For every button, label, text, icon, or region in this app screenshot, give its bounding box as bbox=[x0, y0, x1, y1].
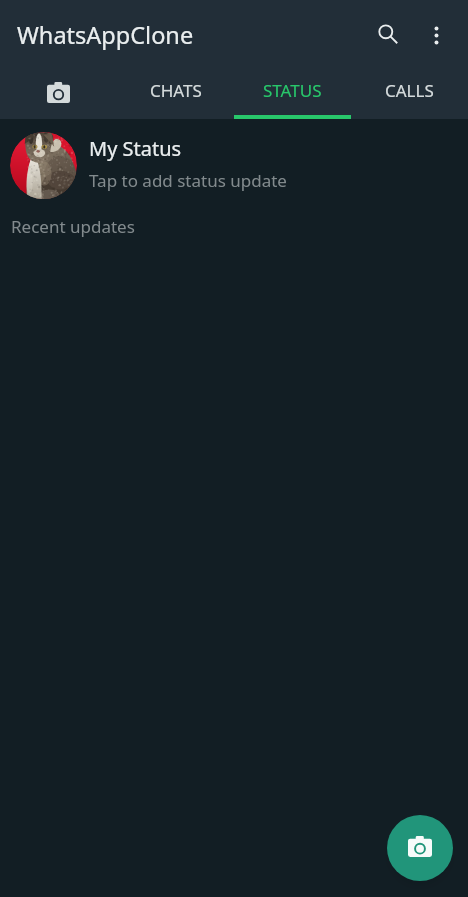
button[interactable]: Camera bbox=[0, 71, 117, 119]
staticText: Recent updates bbox=[11, 215, 135, 238]
staticText: Tap to add status update bbox=[89, 169, 287, 192]
button[interactable]: STATUS bbox=[234, 71, 351, 119]
staticText: STATUS bbox=[263, 79, 322, 102]
staticText: My Status bbox=[89, 135, 182, 162]
button[interactable]: New status update bbox=[387, 815, 453, 881]
staticText: WhatsAppClone bbox=[17, 19, 194, 51]
button[interactable]: CHATS bbox=[117, 71, 234, 119]
button[interactable]: My Status bbox=[0, 119, 468, 211]
staticText: CHATS bbox=[150, 79, 202, 102]
button[interactable]: Search bbox=[364, 12, 412, 60]
staticText: CALLS bbox=[385, 79, 434, 102]
button[interactable]: More options bbox=[412, 12, 460, 60]
button[interactable]: CALLS bbox=[351, 71, 468, 119]
